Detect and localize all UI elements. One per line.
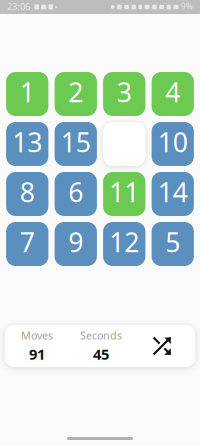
staticText: 3 bbox=[117, 74, 132, 110]
staticText: 10 bbox=[158, 124, 188, 160]
staticText: 13 bbox=[12, 124, 42, 160]
button[interactable]: 11 bbox=[103, 172, 145, 216]
button[interactable]: 8 bbox=[6, 172, 48, 216]
staticText: 7 bbox=[20, 224, 35, 260]
button[interactable]: 1 bbox=[6, 72, 48, 116]
staticText: 15 bbox=[61, 124, 91, 160]
staticText: 91 bbox=[29, 344, 45, 364]
staticText: 9% bbox=[181, 1, 193, 12]
staticText: 23:06 bbox=[7, 0, 30, 13]
button[interactable]: 6 bbox=[55, 172, 97, 216]
button[interactable]: 5 bbox=[152, 222, 194, 266]
button[interactable]: 14 bbox=[152, 172, 194, 216]
staticText: 6 bbox=[68, 174, 83, 210]
staticText: 2 bbox=[68, 74, 83, 110]
staticText: 11 bbox=[109, 174, 139, 210]
button[interactable]: 7 bbox=[6, 222, 48, 266]
staticText: 14 bbox=[158, 174, 188, 210]
staticText: 1 bbox=[20, 74, 35, 110]
button[interactable]: 13 bbox=[6, 122, 48, 166]
staticText: Moves bbox=[21, 328, 53, 342]
button[interactable]: 9 bbox=[55, 222, 97, 266]
staticText: 5 bbox=[165, 224, 180, 260]
staticText: 9 bbox=[68, 224, 83, 260]
staticText: 4 bbox=[165, 74, 180, 110]
button[interactable]: 4 bbox=[152, 72, 194, 116]
button[interactable]: 15 bbox=[55, 122, 97, 166]
button[interactable]: 12 bbox=[103, 222, 145, 266]
button[interactable]: 2 bbox=[55, 72, 97, 116]
staticText: Seconds bbox=[80, 328, 122, 342]
staticText: 8 bbox=[20, 174, 35, 210]
button[interactable]: Shuffle bbox=[133, 325, 195, 367]
button[interactable]: 3 bbox=[103, 72, 145, 116]
staticText: 45 bbox=[93, 344, 109, 364]
staticText: 12 bbox=[109, 224, 139, 260]
button[interactable]: 10 bbox=[152, 122, 194, 166]
